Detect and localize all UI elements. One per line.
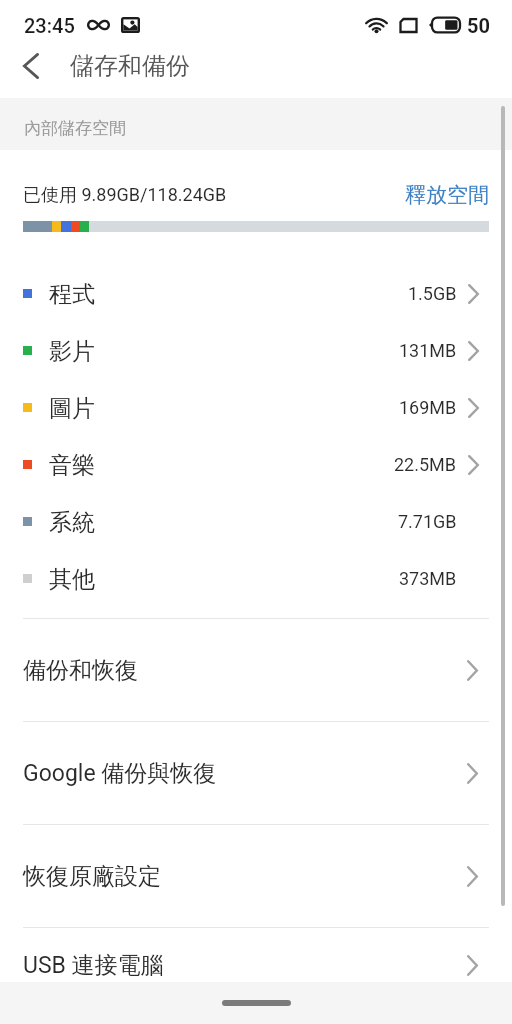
staticText: 其他 [49,565,95,594]
other: Battery 50 percent [429,17,460,33]
other: Screenshot captured [121,17,140,33]
button[interactable]: 圖片 [0,379,512,436]
button[interactable]: 釋放空間 [405,182,489,208]
staticText: 圖片 [49,394,95,423]
staticText: 恢復原廠設定 [23,862,161,891]
staticText: 音樂 [49,451,95,480]
staticText: 內部儲存空間 [24,118,126,139]
staticText: 23:45 [24,14,75,37]
staticText: 1.5GB [408,283,457,304]
staticText: 儲存和備份 [70,51,190,81]
button[interactable]: Back [0,44,62,98]
button[interactable]: Google 備份與恢復 [0,722,512,824]
staticText: 22.5MB [394,454,457,475]
button[interactable]: 程式 [0,265,512,322]
staticText: 50 [467,14,490,37]
staticText: 釋放空間 [405,182,489,208]
staticText: 169MB [399,397,457,418]
staticText: 影片 [49,337,95,366]
staticText: 131MB [399,340,457,361]
staticText: USB 連接電腦 [23,951,164,980]
other: SIM card [399,17,418,34]
staticText: 373MB [399,568,457,589]
button[interactable]: 其他 [0,550,512,607]
staticText: 備份和恢復 [23,656,138,685]
staticText: 系統 [49,508,95,537]
staticText: 已使用 9.89GB/118.24GB [23,184,227,207]
other: Unlimited data [87,18,110,32]
button[interactable]: USB 連接電腦 [0,928,512,1002]
staticText: 7.71GB [398,511,457,532]
button[interactable]: 備份和恢復 [0,619,512,721]
staticText: Google 備份與恢復 [23,759,217,788]
button[interactable]: 影片 [0,322,512,379]
button[interactable]: 音樂 [0,436,512,493]
other: Wi-Fi connected [365,17,388,34]
button[interactable]: 系統 [0,493,512,550]
button[interactable]: 恢復原廠設定 [0,825,512,927]
staticText: 程式 [49,280,95,309]
